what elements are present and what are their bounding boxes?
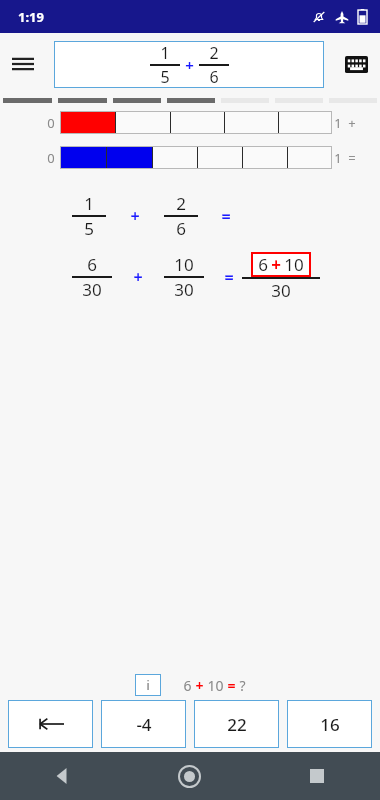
staticText: = <box>348 149 356 167</box>
button[interactable]: Home <box>126 752 253 800</box>
button[interactable]: i <box>135 674 161 696</box>
staticText: i <box>146 677 150 693</box>
staticText: 1 <box>334 114 342 132</box>
staticText: ? <box>239 676 246 695</box>
button[interactable]: -4 <box>101 700 186 748</box>
staticText: 30 <box>174 278 194 301</box>
button[interactable]: 1 <box>54 41 324 88</box>
staticText: 22 <box>227 713 247 736</box>
button[interactable]: Keyboard <box>332 40 380 88</box>
staticText: 6 <box>258 253 268 276</box>
staticText: 0 <box>42 114 60 132</box>
staticText: 30 <box>271 279 291 302</box>
staticText: 1 <box>84 192 94 215</box>
staticText: + <box>271 253 281 276</box>
staticText: 10 <box>207 676 224 695</box>
staticText: 0 <box>42 149 60 167</box>
staticText: -4 <box>136 713 152 736</box>
staticText: 1 <box>160 42 170 64</box>
staticText: 2 <box>176 192 186 215</box>
staticText: 6 <box>209 66 219 88</box>
staticText: + <box>121 205 149 227</box>
staticText: + <box>195 676 204 695</box>
staticText: 10 <box>284 253 304 276</box>
staticText: 5 <box>84 217 94 240</box>
staticText: 30 <box>82 278 102 301</box>
button[interactable] <box>60 146 332 169</box>
staticText: + <box>124 266 152 288</box>
button[interactable]: 6 <box>258 253 304 276</box>
button[interactable]: Menu <box>0 41 46 87</box>
button[interactable]: Back <box>0 752 126 800</box>
staticText: 16 <box>320 713 340 736</box>
staticText: 1 <box>334 149 342 167</box>
staticText: + <box>185 55 194 75</box>
staticText: 6 <box>183 676 192 695</box>
staticText: = <box>216 266 242 288</box>
button[interactable]: Recent apps <box>253 752 380 800</box>
button[interactable]: 22 <box>194 700 279 748</box>
button[interactable]: 16 <box>287 700 372 748</box>
staticText: 5 <box>160 66 170 88</box>
staticText: 1:19 <box>18 8 44 26</box>
button[interactable]: Backspace <box>8 700 93 748</box>
staticText: = <box>227 676 236 695</box>
staticText: + <box>348 114 356 132</box>
staticText: 6 <box>87 253 97 276</box>
staticText: 6 <box>176 217 186 240</box>
staticText: 2 <box>209 42 219 64</box>
button[interactable] <box>60 111 332 134</box>
staticText: = <box>213 205 239 227</box>
staticText: 10 <box>174 253 194 276</box>
